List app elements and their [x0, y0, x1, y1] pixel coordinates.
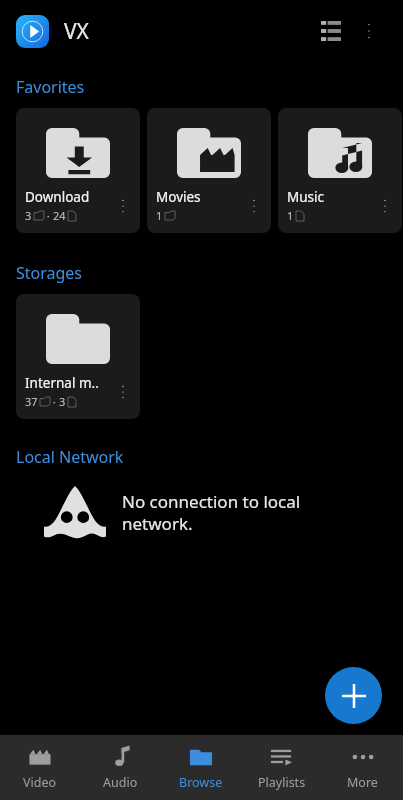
button[interactable]: Download [16, 108, 140, 233]
button[interactable]: Browse [160, 735, 241, 800]
button[interactable]: Item options [110, 193, 136, 219]
staticText: Audio [103, 774, 138, 791]
staticText: No connection to local network. [122, 490, 373, 535]
button[interactable]: Item options [372, 193, 398, 219]
button[interactable]: More [322, 735, 403, 800]
staticText: 37 [25, 394, 38, 409]
staticText: Music [287, 188, 325, 206]
button[interactable]: Add [325, 667, 382, 724]
staticText: Video [23, 774, 57, 791]
staticText: 1 [287, 208, 294, 223]
button[interactable]: Audio [80, 735, 160, 800]
staticText: · [50, 394, 59, 409]
button[interactable]: Item options [241, 193, 267, 219]
staticText: VX [64, 17, 89, 46]
staticText: Favorites [16, 76, 85, 98]
staticText: Storages [16, 262, 83, 284]
staticText: 3 [25, 208, 32, 223]
button[interactable]: Music [278, 108, 402, 233]
staticText: Playlists [258, 774, 306, 791]
button[interactable]: Playlists [241, 735, 322, 800]
staticText: Browse [179, 774, 223, 791]
button[interactable]: More options [351, 13, 387, 49]
staticText: More [347, 774, 378, 791]
staticText: 3 [59, 394, 66, 409]
staticText: Download [25, 188, 90, 206]
button[interactable]: Item options [110, 379, 136, 405]
staticText: 1 [156, 208, 163, 223]
staticText: · [44, 208, 53, 223]
button[interactable]: Video [0, 735, 80, 800]
staticText: Local Network [16, 446, 124, 468]
button[interactable]: List view [311, 11, 351, 51]
button[interactable]: Internal m.. [16, 294, 140, 419]
button[interactable]: App icon [16, 15, 49, 48]
staticText: Movies [156, 188, 201, 206]
button[interactable]: Movies [147, 108, 271, 233]
staticText: Internal m.. [25, 374, 99, 392]
staticText: 24 [53, 208, 66, 223]
